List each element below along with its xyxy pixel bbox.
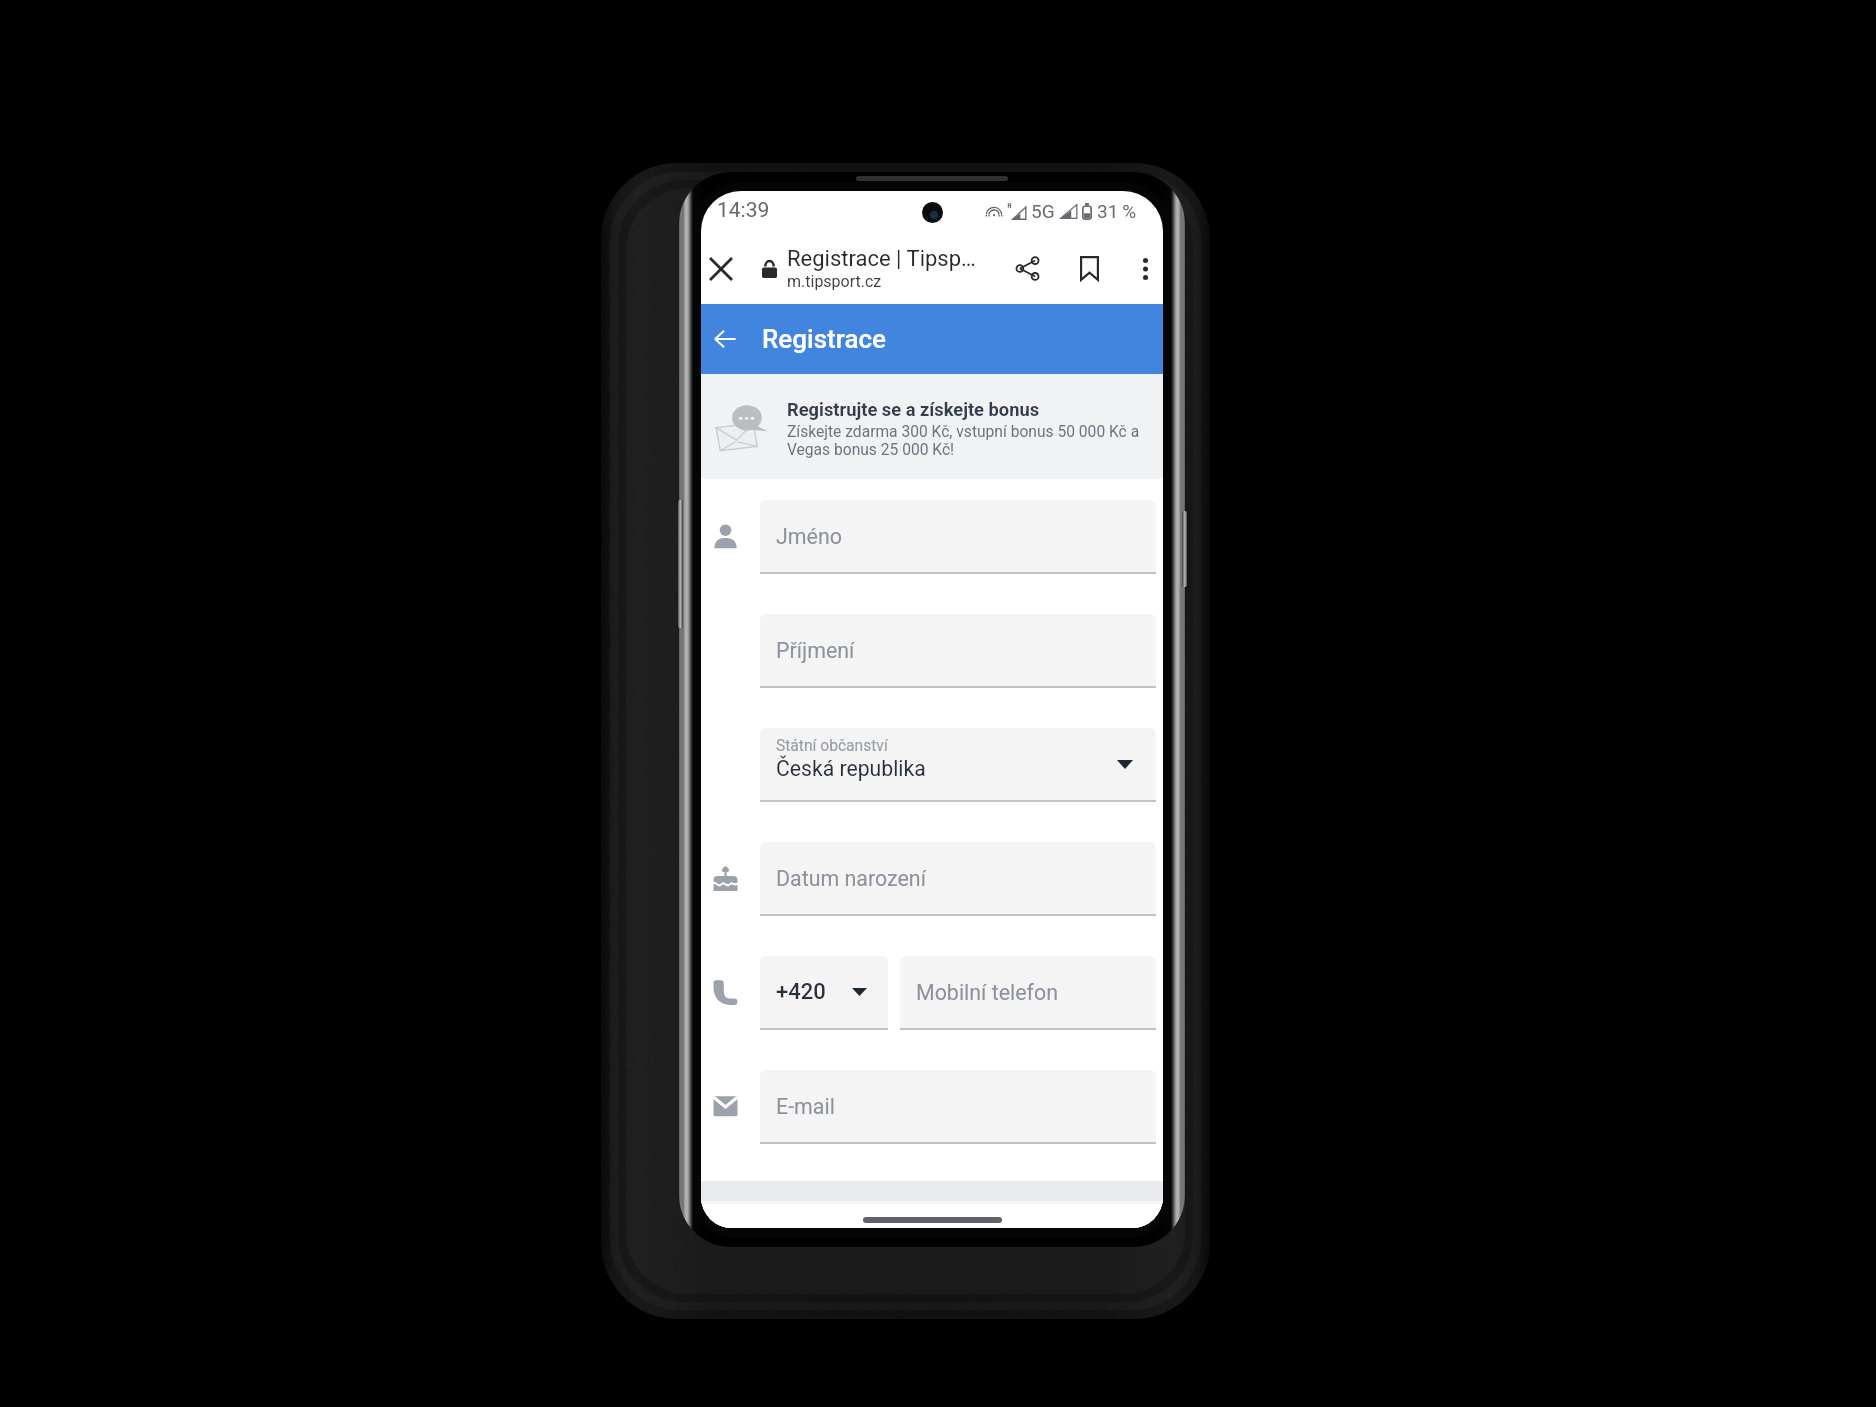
staticText: Registrace | Tipsp… xyxy=(787,246,976,272)
staticText: +420 xyxy=(776,979,826,1005)
staticText: 5G xyxy=(1031,200,1055,222)
button[interactable]: Mobilní telefon xyxy=(900,956,1156,1028)
button[interactable]: Státní občanství xyxy=(760,728,1156,800)
staticText: Státní občanství xyxy=(776,737,888,755)
staticText: Získejte zdarma 300 Kč, vstupní bonus 50… xyxy=(787,423,1155,459)
button[interactable]: +420 xyxy=(760,956,888,1028)
button[interactable]: Datum narození xyxy=(760,842,1156,914)
staticText: 14:39 xyxy=(717,198,770,223)
button[interactable]: More options xyxy=(1127,233,1163,304)
staticText: Registrujte se a získejte bonus xyxy=(787,399,1040,420)
staticText: Mobilní telefon xyxy=(916,980,1059,1005)
staticText: Příjmení xyxy=(776,638,855,663)
button[interactable]: E-mail xyxy=(760,1070,1156,1142)
staticText: Česká republika xyxy=(776,756,926,781)
staticText: E-mail xyxy=(776,1094,835,1119)
staticText: Jméno xyxy=(776,524,842,549)
staticText: Registrace xyxy=(762,324,886,354)
button[interactable]: Příjmení xyxy=(760,614,1156,686)
button[interactable]: Bookmark xyxy=(1052,233,1127,304)
staticText: Datum narození xyxy=(776,866,926,891)
button[interactable]: Back xyxy=(701,304,749,374)
button[interactable]: Close xyxy=(701,233,740,304)
button[interactable]: Jméno xyxy=(760,500,1156,572)
button[interactable]: Share xyxy=(1002,233,1052,304)
staticText: 31 % xyxy=(1097,200,1137,222)
staticText: m.tipsport.cz xyxy=(787,272,882,291)
